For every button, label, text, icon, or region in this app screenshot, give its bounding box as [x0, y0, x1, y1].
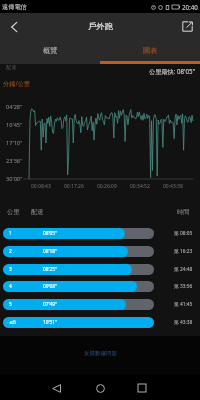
staticText: 公里: [7, 208, 20, 216]
button[interactable]: 反饋數據問題: [76, 347, 125, 360]
button[interactable]: Share: [175, 14, 200, 39]
staticText: 08'18": [43, 248, 58, 255]
staticText: 時間: [177, 208, 190, 216]
staticText: 戶外跑: [88, 21, 113, 31]
staticText: 2: [9, 248, 12, 255]
button[interactable]: 4: [0, 281, 200, 292]
staticText: 配速: [31, 208, 44, 216]
staticText: 遠傳電信: [2, 3, 27, 11]
staticText: 概覽: [43, 46, 58, 55]
button[interactable]: 圖表: [100, 39, 200, 61]
staticText: 00:08:43: [31, 183, 51, 190]
staticText: 09'08": [43, 283, 58, 290]
staticText: 第 24:48: [174, 266, 193, 273]
staticText: 1: [9, 230, 12, 237]
staticText: 第 41:45: [174, 301, 193, 308]
staticText: 第 43:38: [174, 319, 193, 326]
button[interactable]: Back: [42, 375, 70, 400]
staticText: 00:43:38: [163, 183, 183, 190]
staticText: 17'10": [6, 139, 23, 147]
button[interactable]: 概覽: [0, 39, 100, 61]
staticText: 10'51": [43, 319, 58, 326]
staticText: 反饋數據問題: [84, 350, 117, 357]
staticText: 04'28": [6, 103, 23, 111]
staticText: 08'05": [43, 230, 58, 237]
staticText: 第 08:05: [174, 230, 193, 237]
staticText: ≤6: [9, 319, 16, 326]
staticText: 00:17:26: [64, 183, 84, 190]
staticText: 23'36": [6, 157, 23, 165]
button[interactable]: ≤6: [0, 317, 200, 328]
staticText: 07'49": [43, 301, 58, 308]
staticText: 3: [9, 266, 12, 273]
staticText: 00:34:52: [130, 183, 150, 190]
button[interactable]: Back: [0, 14, 25, 39]
button[interactable]: Home: [86, 375, 114, 400]
staticText: 08'25": [43, 266, 58, 273]
staticText: 分鐘/公里: [3, 79, 31, 87]
staticText: 公里最快: 08'05": [149, 67, 196, 75]
staticText: 圖表: [143, 46, 158, 55]
staticText: 00:26:09: [97, 183, 117, 190]
staticText: 5: [9, 301, 12, 308]
staticText: 第 16:23: [174, 248, 193, 255]
button[interactable]: 5: [0, 299, 200, 310]
button[interactable]: 1: [0, 228, 200, 239]
staticText: 配速: [6, 64, 17, 71]
staticText: 30'00": [6, 175, 23, 183]
button[interactable]: 2: [0, 246, 200, 257]
button[interactable]: Recents: [128, 375, 156, 400]
staticText: 4: [9, 283, 12, 290]
staticText: 第 33:56: [174, 283, 193, 290]
button[interactable]: 3: [0, 264, 200, 275]
staticText: 20:40: [182, 3, 198, 11]
staticText: 10'45": [6, 121, 23, 129]
